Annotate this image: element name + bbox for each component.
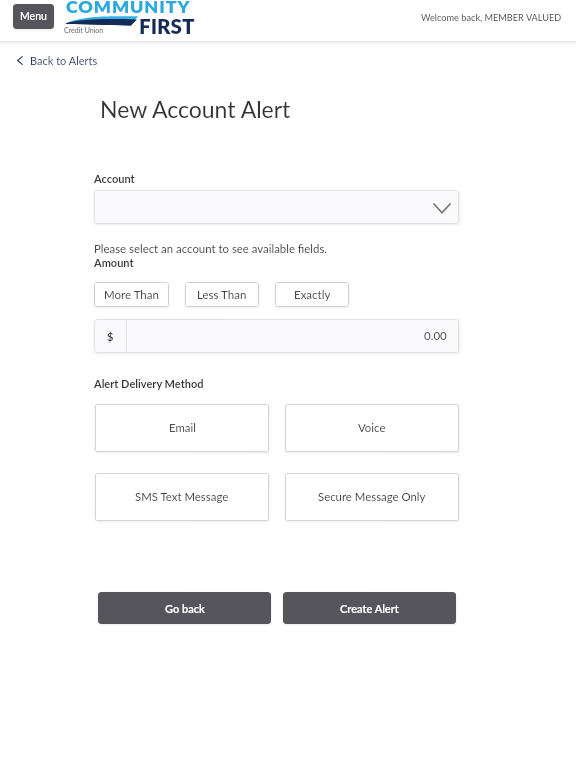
staticText: 0.00 <box>424 329 447 343</box>
staticText: Menu <box>20 10 47 23</box>
staticText: Alert Delivery Method <box>94 377 204 390</box>
staticText: Account <box>94 172 135 185</box>
staticText: Back to Alerts <box>30 54 98 67</box>
button[interactable]: Back to Alerts <box>13 52 102 69</box>
staticText: Amount <box>94 256 134 269</box>
staticText: Email <box>169 421 196 435</box>
button[interactable]: Less Than <box>185 282 259 307</box>
staticText: Exactly <box>294 288 331 302</box>
staticText: Less Than <box>197 288 247 302</box>
staticText: New Account Alert <box>100 95 291 123</box>
button[interactable]: Create Alert <box>283 592 456 624</box>
staticText: FIRST <box>139 13 195 38</box>
button[interactable]: Select account <box>94 190 459 224</box>
button[interactable]: Voice <box>285 404 459 452</box>
staticText: Credit Union <box>64 26 104 34</box>
staticText: Secure Message Only <box>318 490 426 504</box>
button[interactable]: Exactly <box>275 282 349 307</box>
button[interactable]: SMS Text Message <box>95 473 269 521</box>
staticText: More Than <box>104 288 159 302</box>
staticText: COMMUNITY <box>66 0 191 16</box>
button[interactable]: Email <box>95 404 269 452</box>
staticText: Go back <box>165 602 205 615</box>
button[interactable]: More Than <box>94 282 169 307</box>
button[interactable]: Go back <box>98 592 271 624</box>
button[interactable]: $ <box>94 319 459 353</box>
staticText: Welcome back, MEMBER VALUED <box>421 12 562 23</box>
staticText: SMS Text Message <box>135 490 229 504</box>
staticText: Voice <box>358 421 386 435</box>
button[interactable]: Secure Message Only <box>285 473 459 521</box>
staticText: Create Alert <box>340 602 399 615</box>
button[interactable]: Menu <box>13 4 54 29</box>
staticText: $ <box>107 330 114 343</box>
staticText: Please select an account to see availabl… <box>94 242 328 256</box>
